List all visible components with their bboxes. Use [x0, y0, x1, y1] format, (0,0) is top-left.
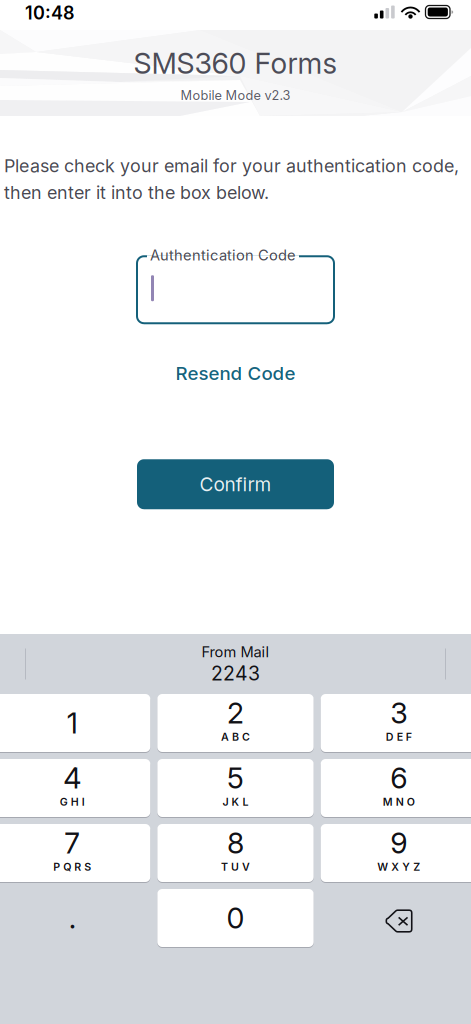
staticText: Confirm [199, 473, 271, 496]
staticText: Resend Code [175, 362, 295, 384]
button[interactable]: 0 [157, 889, 314, 947]
staticText: Authentication Code [150, 246, 296, 264]
staticText: SMS360 Forms [133, 46, 337, 81]
staticText: 8 [227, 826, 244, 860]
staticText: 9 [390, 826, 407, 860]
staticText: 10:48 [25, 2, 75, 24]
staticText: 4 [63, 761, 81, 795]
staticText: 2243 [211, 662, 260, 685]
button[interactable]: Confirm [137, 459, 334, 509]
staticText: W X Y Z [377, 860, 420, 873]
button[interactable]: 9 [321, 824, 471, 882]
button[interactable]: 3 [321, 694, 471, 752]
button[interactable]: 6 [321, 759, 471, 817]
staticText: D E F [386, 730, 412, 743]
staticText: 6 [390, 761, 407, 795]
staticText: 0 [226, 901, 244, 935]
staticText: 7 [64, 826, 80, 860]
button[interactable]: 2 [157, 694, 314, 752]
button[interactable]: Resend Code [175, 361, 295, 385]
staticText: From Mail [201, 643, 269, 661]
button[interactable]: Decimal point [0, 889, 150, 947]
button[interactable]: 4 [0, 759, 150, 817]
staticText: A B C [221, 730, 250, 743]
staticText: 1 [67, 706, 78, 740]
button[interactable]: Delete [321, 889, 471, 947]
button[interactable]: From Mail [0, 634, 471, 694]
staticText: J K L [222, 795, 248, 808]
staticText: . [69, 901, 76, 935]
button[interactable]: 8 [157, 824, 314, 882]
staticText: T U V [221, 860, 250, 873]
staticText: P Q R S [53, 860, 91, 873]
staticText: G H I [60, 795, 85, 808]
staticText: Mobile Mode v2.3 [180, 88, 290, 103]
staticText: 3 [390, 696, 407, 730]
staticText: 5 [227, 761, 244, 795]
button[interactable]: 7 [0, 824, 150, 882]
button[interactable]: 1 [0, 694, 150, 752]
button[interactable]: 5 [157, 759, 314, 817]
staticText: 2 [227, 696, 244, 730]
staticText: Please check your email for your authent… [4, 155, 459, 203]
staticText: M N O [383, 795, 415, 808]
